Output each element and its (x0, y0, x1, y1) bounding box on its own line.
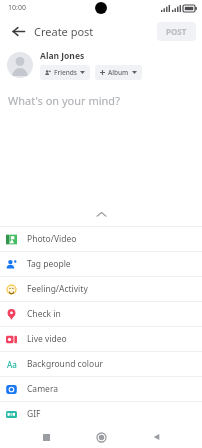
button[interactable]: Tag people (0, 252, 202, 276)
button[interactable]: Feeling/Activity (0, 277, 202, 301)
staticText: Photo/Video (27, 233, 77, 245)
staticText: Album (108, 68, 129, 77)
button[interactable]: Back (7, 20, 29, 42)
button[interactable]: Aa (0, 352, 202, 376)
staticText: Alan Jones (40, 50, 85, 62)
staticText: Check in (27, 308, 61, 320)
button[interactable]: Live video (0, 327, 202, 351)
button[interactable]: Back (147, 428, 165, 446)
button[interactable]: GIF (0, 402, 202, 426)
staticText: POST (166, 26, 187, 37)
button[interactable]: Home (92, 428, 110, 446)
staticText: Feeling/Activity (27, 283, 88, 295)
staticText: Aa (7, 359, 17, 370)
staticText: Background colour (27, 358, 103, 370)
staticText: GIF (27, 408, 41, 420)
button[interactable]: Friends (40, 65, 90, 80)
button[interactable]: Photo/Video (0, 227, 202, 251)
button[interactable]: Recents (37, 428, 55, 446)
button[interactable]: Check in (0, 302, 202, 326)
staticText: Tag people (27, 258, 71, 270)
button[interactable]: POST (157, 22, 196, 41)
button[interactable]: Album (95, 65, 142, 80)
staticText: What's on your mind? (8, 93, 120, 108)
button[interactable]: Collapse (0, 203, 202, 226)
staticText: Friends (54, 68, 77, 77)
staticText: Live video (27, 333, 67, 345)
staticText: Create post (34, 24, 94, 39)
button[interactable]: Camera (0, 377, 202, 401)
staticText: 10:00 (8, 3, 26, 13)
staticText: Camera (27, 383, 58, 395)
